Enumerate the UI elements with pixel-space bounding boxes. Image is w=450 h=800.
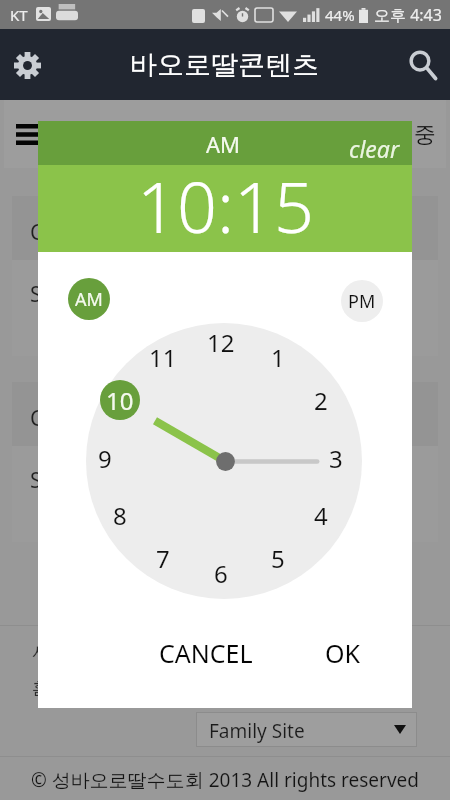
staticText: S bbox=[30, 280, 42, 309]
button[interactable]: OK bbox=[303, 631, 383, 675]
staticText: 8 bbox=[113, 499, 127, 532]
button[interactable]: 8 bbox=[100, 495, 140, 535]
button[interactable]: 2 bbox=[301, 380, 341, 420]
staticText: 10:15 bbox=[137, 158, 314, 245]
staticText: C bbox=[30, 218, 44, 247]
staticText: © 성바오로딸수도회 2013 All rights reserved bbox=[0, 767, 450, 793]
button[interactable]: Menu bbox=[8, 117, 48, 151]
button[interactable]: AM bbox=[68, 278, 110, 320]
button[interactable]: 9 bbox=[85, 438, 125, 478]
button[interactable]: 10 bbox=[100, 380, 140, 420]
button[interactable]: 11 bbox=[143, 337, 183, 377]
button[interactable]: 6 bbox=[201, 553, 241, 593]
button[interactable]: 1 bbox=[258, 337, 298, 377]
staticText: 사이트 바로가기 bbox=[32, 640, 156, 663]
staticText: 44% bbox=[325, 5, 355, 25]
staticText: 중 bbox=[414, 121, 436, 149]
staticText: 9 bbox=[98, 442, 112, 475]
button[interactable]: C bbox=[12, 196, 438, 356]
button[interactable]: PM bbox=[341, 280, 383, 322]
button[interactable]: Family Site bbox=[197, 713, 416, 746]
button[interactable]: 12 bbox=[201, 322, 241, 362]
staticText: 6 bbox=[214, 557, 228, 590]
staticText: KT bbox=[10, 5, 28, 25]
staticText: 바오로딸콘텐츠 bbox=[130, 48, 319, 82]
staticText: 2 bbox=[314, 384, 328, 417]
staticText: AM bbox=[206, 129, 241, 159]
staticText: AM bbox=[75, 287, 103, 312]
staticText: 오후 4:43 bbox=[374, 4, 442, 26]
staticText: 10 bbox=[106, 384, 134, 417]
button[interactable]: CANCEL bbox=[146, 631, 266, 675]
button[interactable]: 4 bbox=[301, 495, 341, 535]
staticText: OK bbox=[325, 636, 361, 670]
button[interactable]: 5 bbox=[258, 538, 298, 578]
staticText: 11 bbox=[149, 341, 177, 374]
staticText: 7 bbox=[156, 542, 170, 575]
staticText: C bbox=[30, 404, 44, 433]
staticText: 4 bbox=[314, 499, 328, 532]
staticText: CANCEL bbox=[159, 636, 253, 670]
button[interactable]: 10:15 bbox=[38, 165, 412, 252]
staticText: PM bbox=[348, 289, 376, 314]
button[interactable]: Settings bbox=[5, 43, 49, 87]
staticText: 1 bbox=[271, 341, 285, 374]
button[interactable]: C bbox=[12, 382, 438, 542]
button[interactable]: Search bbox=[401, 43, 445, 87]
button[interactable]: clear bbox=[337, 129, 412, 168]
staticText: 3 bbox=[329, 442, 343, 475]
staticText: 12 bbox=[207, 326, 235, 359]
button[interactable]: 7 bbox=[143, 538, 183, 578]
staticText: Family Site bbox=[209, 718, 305, 744]
staticText: S bbox=[30, 466, 42, 495]
staticText: 5 bbox=[271, 542, 285, 575]
staticText: 홈페이지 bbox=[32, 678, 100, 699]
button[interactable]: 3 bbox=[316, 438, 356, 478]
staticText: clear bbox=[349, 133, 400, 164]
